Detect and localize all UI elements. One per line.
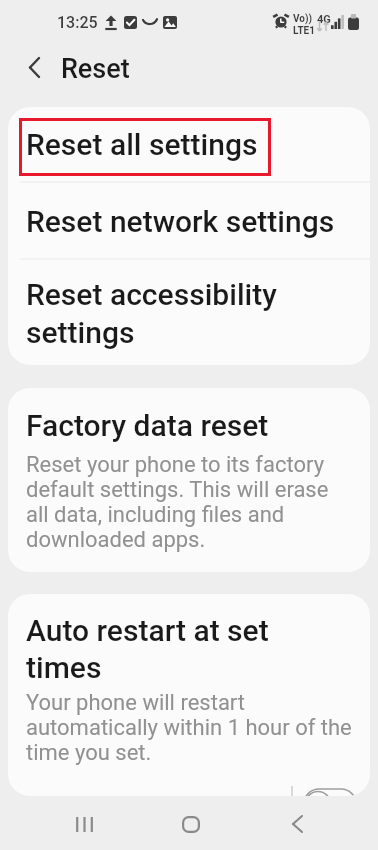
button[interactable]: Reset accessibility settings <box>8 260 370 365</box>
button[interactable]: Reset network settings <box>8 183 370 258</box>
staticText: Your phone will restart automatically wi… <box>26 690 354 765</box>
staticText: Factory data reset <box>26 406 269 444</box>
staticText: Reset network settings <box>26 202 335 240</box>
button[interactable]: Navigate up <box>17 50 52 85</box>
staticText: Reset all settings <box>26 125 258 163</box>
staticText: Reset <box>61 53 130 85</box>
staticText: 4G <box>317 13 331 26</box>
button[interactable]: Back <box>273 800 321 848</box>
staticText: 13:25 <box>57 13 98 32</box>
staticText: Reset your phone to its factory default … <box>26 452 336 552</box>
staticText: Vo)) <box>293 13 313 25</box>
staticText: Reset accessibility settings <box>26 275 348 351</box>
staticText: LTE1 <box>293 25 315 37</box>
button[interactable]: Reset all settings <box>8 107 370 181</box>
button[interactable]: Home <box>167 800 215 848</box>
button[interactable]: Recent apps <box>60 800 108 848</box>
staticText: Auto restart at set times <box>26 612 291 686</box>
